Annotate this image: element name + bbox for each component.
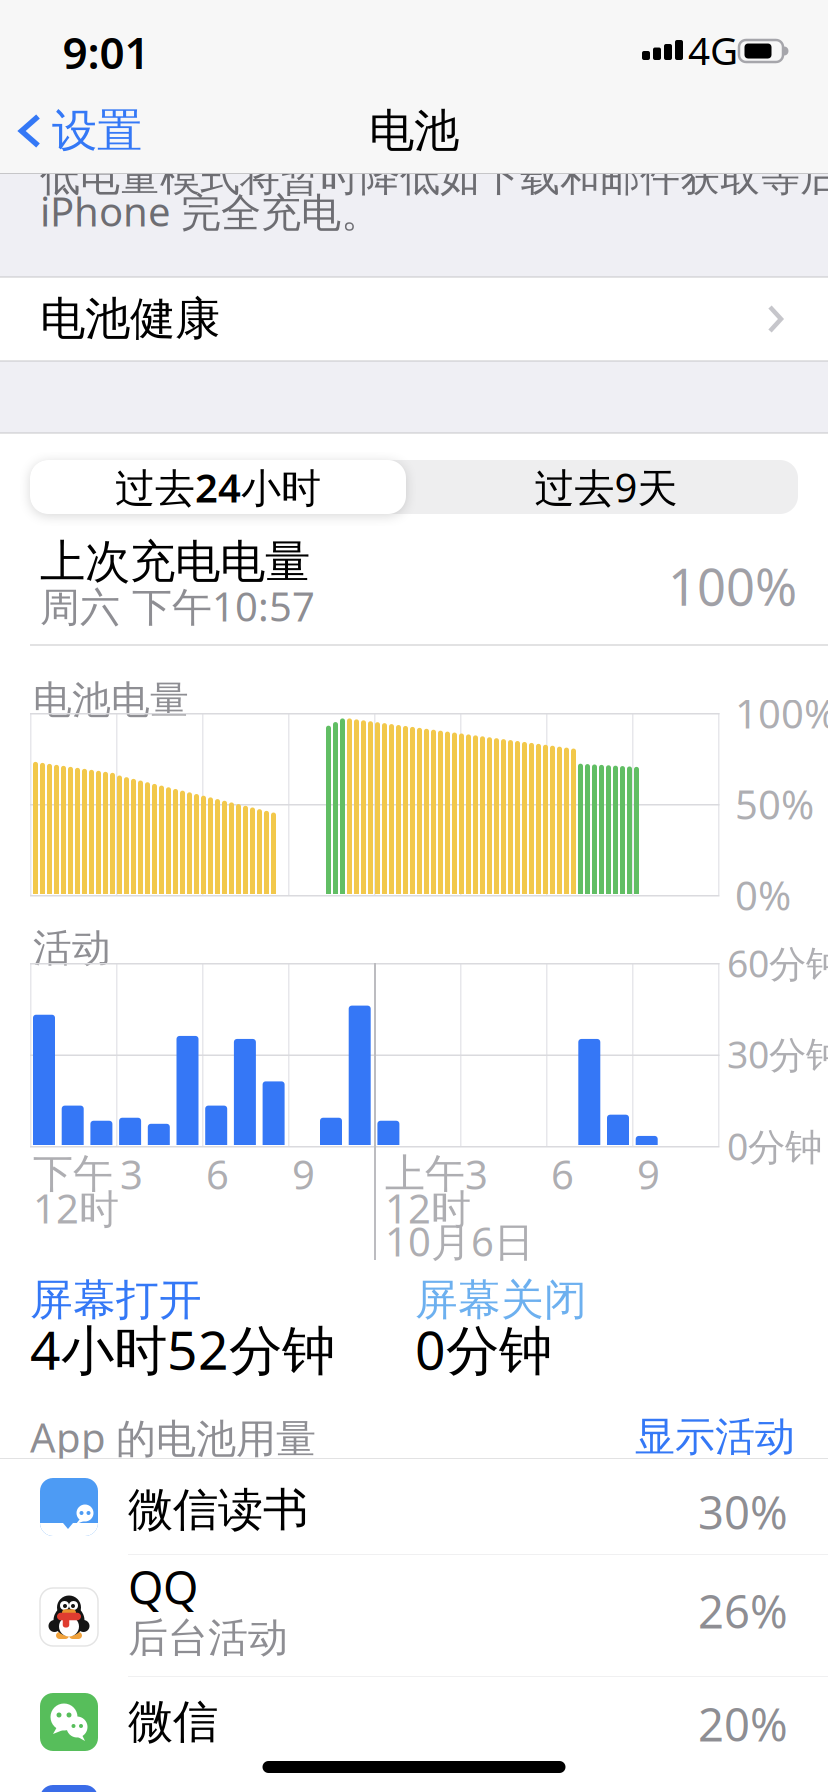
staticText: 屏幕打开 bbox=[30, 1274, 202, 1326]
staticText: 上午 bbox=[385, 1149, 465, 1198]
staticText: 12时 bbox=[385, 1181, 471, 1234]
staticText: 后台活动 bbox=[128, 1613, 288, 1662]
staticText: 过去24小时 bbox=[115, 460, 321, 513]
staticText: 0分钟 bbox=[727, 1121, 822, 1171]
button[interactable]: 过去24小时 bbox=[30, 460, 406, 514]
staticText: 4小时52分钟 bbox=[30, 1314, 335, 1384]
staticText: 100% bbox=[668, 552, 797, 620]
staticText: 周六 下午10:57 bbox=[40, 579, 315, 632]
button[interactable]: 微信读书 bbox=[0, 1459, 828, 1555]
staticText: iPhone 完全充电。 bbox=[40, 184, 381, 238]
staticText: 6 bbox=[551, 1147, 574, 1200]
staticText: 9 bbox=[292, 1147, 315, 1200]
staticText: 100% bbox=[735, 686, 828, 739]
staticText: 设置 bbox=[52, 103, 142, 159]
staticText: 显示活动 bbox=[635, 1412, 795, 1461]
staticText: 电池 bbox=[369, 103, 459, 159]
staticText: 20% bbox=[698, 1694, 788, 1754]
staticText: 微信 bbox=[128, 1694, 218, 1750]
staticText: 10月6日 bbox=[385, 1214, 534, 1267]
button[interactable]: 电池健康 bbox=[0, 277, 828, 361]
staticText: 低电量模式将暂时降低如下载和邮件获取等后台活动，直至 bbox=[40, 152, 828, 201]
staticText: 电池健康 bbox=[40, 291, 220, 347]
staticText: 0分钟 bbox=[415, 1314, 552, 1384]
staticText: 30分钟 bbox=[727, 1029, 828, 1079]
staticText: 3 bbox=[120, 1147, 143, 1200]
staticText: 上次充电电量 bbox=[40, 534, 310, 590]
staticText: 微信读书 bbox=[128, 1482, 308, 1538]
staticText: 50% bbox=[735, 777, 814, 830]
button[interactable]: 显示活动 bbox=[595, 1415, 795, 1459]
staticText: 9:01 bbox=[62, 23, 149, 81]
staticText: 60分钟 bbox=[727, 938, 828, 988]
staticText: 30% bbox=[698, 1482, 788, 1542]
staticText: 4G bbox=[688, 24, 738, 76]
staticText: 下午 bbox=[33, 1149, 113, 1198]
staticText: 0% bbox=[735, 868, 791, 921]
staticText: QQ bbox=[128, 1557, 198, 1617]
staticText: 过去9天 bbox=[534, 460, 677, 513]
button[interactable]: 返回设置 bbox=[18, 103, 142, 159]
staticText: 屏幕关闭 bbox=[415, 1274, 587, 1326]
button[interactable]: 微信 bbox=[0, 1677, 828, 1792]
staticText: 12时 bbox=[33, 1181, 119, 1234]
staticText: 活动 bbox=[33, 924, 111, 972]
button[interactable]: QQ bbox=[0, 1555, 828, 1677]
staticText: 26% bbox=[698, 1581, 788, 1641]
staticText: 6 bbox=[206, 1147, 229, 1200]
staticText: App 的电池用量 bbox=[30, 1410, 316, 1464]
button[interactable]: 过去9天 bbox=[416, 460, 796, 514]
staticText: 3 bbox=[465, 1147, 488, 1200]
staticText: 电池电量 bbox=[33, 676, 189, 724]
staticText: 9 bbox=[637, 1147, 660, 1200]
